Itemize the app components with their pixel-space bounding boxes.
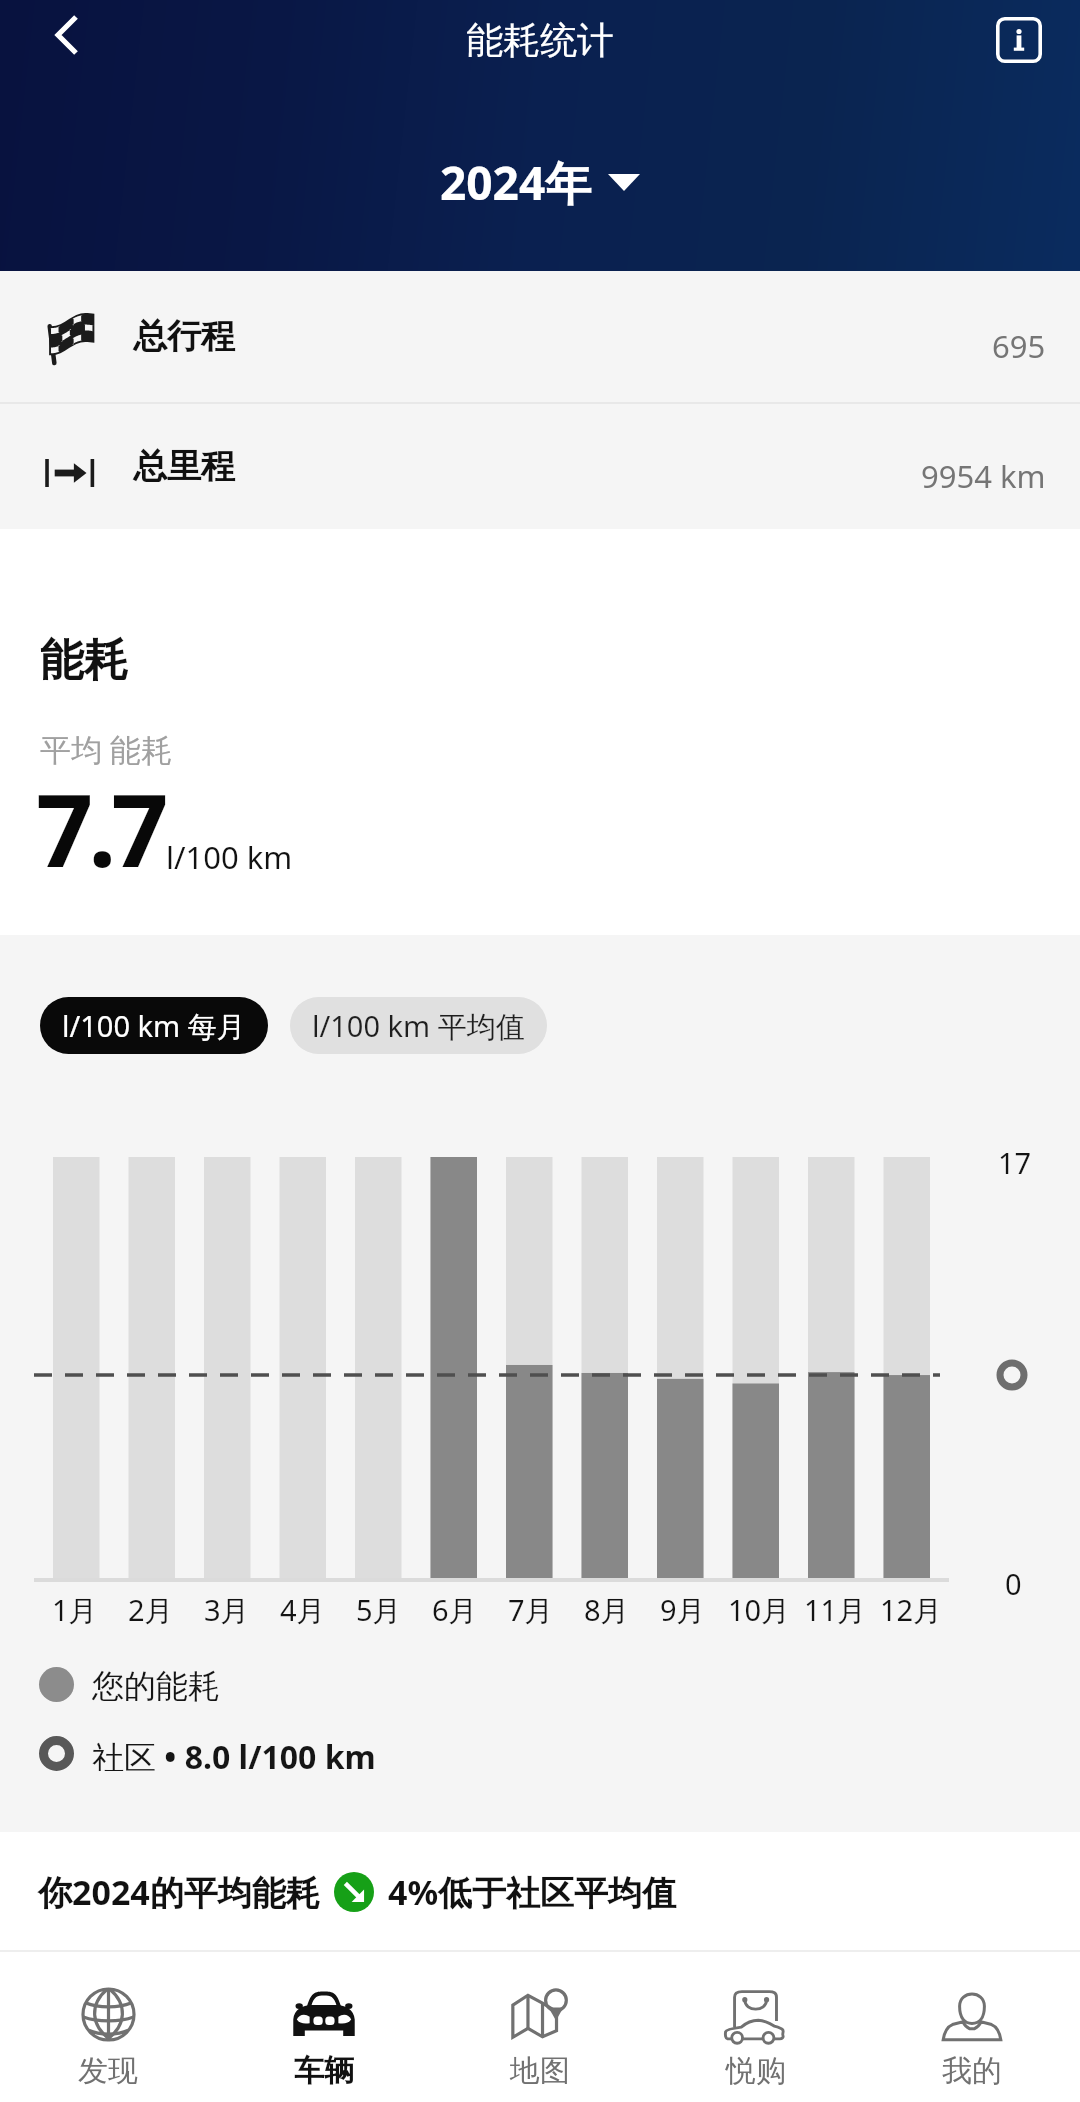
button[interactable]: 发现	[0, 1952, 216, 2102]
button[interactable]: 2024年	[440, 151, 640, 214]
button[interactable]: Info	[979, 0, 1059, 80]
staticText: 4月	[280, 1590, 326, 1630]
staticText: 您的能耗	[92, 1666, 220, 1702]
staticText: 社区 • 8.0 l/100 km	[92, 1735, 376, 1771]
button[interactable]: 悦购	[648, 1952, 864, 2102]
staticText: 7.7	[36, 760, 164, 896]
staticText: 地图	[510, 2052, 570, 2090]
staticText: 1月	[52, 1590, 98, 1630]
staticText: 发现	[78, 2052, 138, 2090]
staticText: l/100 km 平均值	[312, 1006, 525, 1046]
button[interactable]: 总里程	[0, 404, 1080, 529]
staticText: 12月	[880, 1590, 943, 1630]
staticText: l/100 km	[166, 836, 293, 878]
staticText: 2024年	[440, 151, 592, 214]
staticText: 总行程	[133, 315, 235, 358]
staticText: 你2024的平均能耗	[38, 1869, 320, 1915]
staticText: 17	[998, 1143, 1032, 1182]
button[interactable]: l/100 km 每月	[40, 997, 268, 1054]
staticText: 695	[992, 325, 1046, 367]
staticText: 3月	[204, 1590, 250, 1630]
staticText: 10月	[728, 1590, 791, 1630]
staticText: 7月	[508, 1590, 554, 1630]
staticText: 11月	[804, 1590, 867, 1630]
staticText: 悦购	[726, 2052, 786, 2090]
staticText: 我的	[942, 2052, 1002, 2090]
staticText: 2月	[128, 1590, 174, 1630]
staticText: 能耗	[40, 633, 128, 688]
staticText: 9954 km	[921, 455, 1046, 497]
staticText: 平均 能耗	[40, 728, 173, 770]
staticText: 8月	[584, 1590, 630, 1630]
staticText: 车辆	[294, 2052, 354, 2090]
button[interactable]: l/100 km 平均值	[290, 997, 547, 1054]
button[interactable]: 地图	[432, 1952, 648, 2102]
button[interactable]: 我的	[864, 1952, 1080, 2102]
staticText: 总里程	[133, 445, 235, 488]
button[interactable]: 总行程	[0, 271, 1080, 402]
staticText: 0	[1005, 1564, 1022, 1603]
staticText: l/100 km 每月	[62, 1006, 246, 1046]
staticText: 能耗统计	[466, 17, 614, 64]
staticText: 6月	[432, 1590, 478, 1630]
button[interactable]: 车辆	[216, 1952, 432, 2102]
button[interactable]: Back	[32, 0, 102, 70]
staticText: 4%低于社区平均值	[388, 1869, 677, 1915]
staticText: 5月	[356, 1590, 402, 1630]
staticText: 9月	[660, 1590, 706, 1630]
